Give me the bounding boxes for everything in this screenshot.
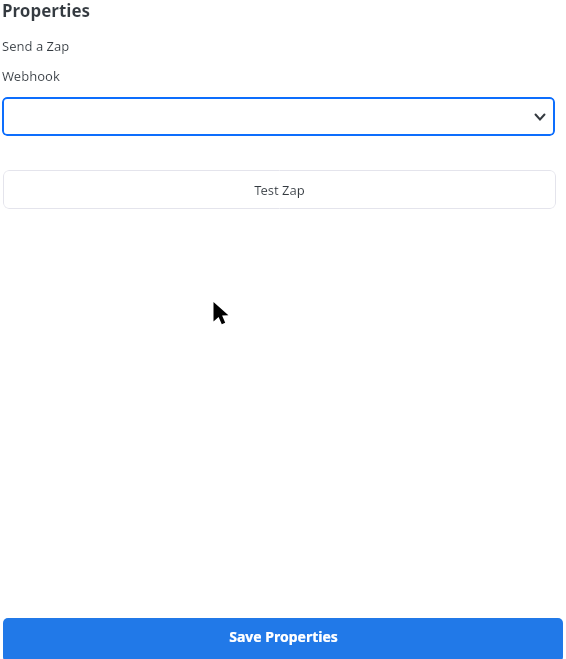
- button[interactable]: Webhook selector: [2, 97, 555, 136]
- staticText: Properties: [2, 0, 91, 22]
- staticText: Webhook: [2, 67, 60, 85]
- staticText: Save Properties: [229, 627, 338, 646]
- button[interactable]: Save Properties: [3, 618, 563, 659]
- staticText: Send a Zap: [2, 37, 70, 55]
- staticText: Test Zap: [254, 181, 305, 199]
- button[interactable]: Test Zap: [3, 170, 556, 209]
